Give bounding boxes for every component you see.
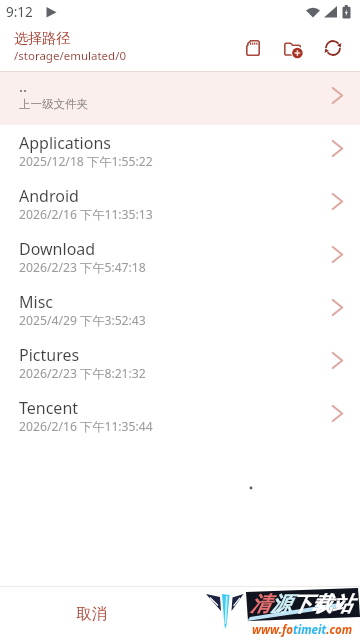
staticText: 选择路径 (14, 30, 70, 48)
staticText: Applications (19, 132, 111, 154)
button[interactable]: Download (0, 231, 360, 284)
button[interactable]: Applications (0, 125, 360, 178)
staticText: Tencent (19, 397, 79, 419)
staticText: 2026/2/16 下午11:35:44 (19, 418, 153, 435)
staticText: Pictures (19, 344, 80, 366)
staticText: 2025/12/18 下午1:55:22 (19, 153, 153, 170)
staticText: 清源下载站 (250, 591, 353, 617)
staticText: Download (19, 238, 96, 260)
button[interactable]: Pictures (0, 337, 360, 390)
staticText: 取消 (76, 604, 107, 624)
button[interactable]: 取消 (56, 587, 126, 640)
button[interactable]: Android (0, 178, 360, 231)
staticText: www.fotimeit.com (252, 622, 353, 638)
button[interactable] (233, 24, 273, 71)
button[interactable]: .. (0, 72, 360, 125)
staticText: 上一级文件夹 (19, 97, 88, 111)
button[interactable]: Misc (0, 284, 360, 337)
staticText: Android (19, 185, 79, 207)
button[interactable] (313, 24, 353, 71)
staticText: .. (19, 76, 28, 96)
button[interactable] (273, 24, 313, 71)
staticText: Misc (19, 291, 53, 313)
staticText: 2026/2/23 下午8:21:32 (19, 365, 146, 382)
staticText: 2025/4/29 下午3:52:43 (19, 312, 146, 329)
staticText: 2026/2/23 下午5:47:18 (19, 259, 146, 276)
button[interactable]: Tencent (0, 390, 360, 443)
staticText: 9:12 (6, 3, 33, 21)
staticText: /storage/emulated/0 (14, 48, 127, 64)
staticText: 2026/2/16 下午11:35:13 (19, 206, 153, 223)
